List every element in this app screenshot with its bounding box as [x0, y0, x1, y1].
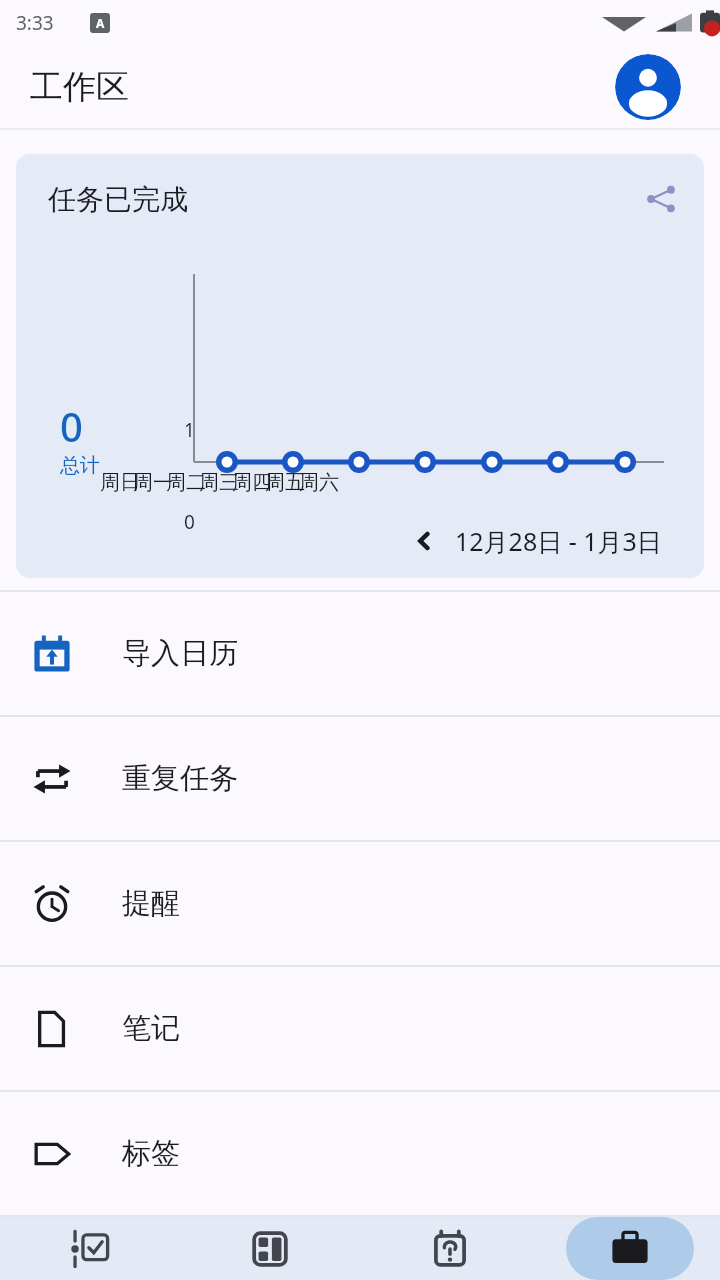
staticText: 导入日历 — [122, 635, 238, 672]
staticText: 周五 — [265, 470, 305, 495]
button[interactable]: 重复任务 — [0, 717, 720, 840]
button[interactable]: 提醒 — [0, 842, 720, 965]
staticText: 1 — [184, 417, 195, 443]
button[interactable]: 导入日历 — [0, 592, 720, 715]
button[interactable]: 看板 — [180, 1217, 360, 1280]
button[interactable]: 笔记 — [0, 967, 720, 1090]
staticText: 周一 — [133, 470, 173, 495]
button[interactable]: Previous week — [407, 518, 668, 564]
staticText: 3:33 — [16, 10, 54, 36]
other: Previous week — [413, 530, 435, 552]
button[interactable]: 时间轴 — [0, 1217, 180, 1280]
staticText: 提醒 — [122, 885, 180, 922]
staticText: 周六 — [299, 470, 339, 495]
button[interactable]: 待定 — [360, 1217, 540, 1280]
button[interactable]: 标签 — [0, 1092, 720, 1215]
button[interactable]: 工作区 — [540, 1217, 720, 1280]
staticText: 12月28日 - 1月3日 — [455, 524, 662, 558]
staticText: 工作区 — [30, 66, 129, 108]
staticText: 周二 — [166, 470, 206, 495]
staticText: 周四 — [232, 470, 272, 495]
staticText: 笔记 — [122, 1010, 180, 1047]
staticText: 任务已完成 — [48, 182, 188, 217]
staticText: A — [96, 15, 105, 31]
button[interactable]: Share — [634, 172, 688, 226]
staticText: 标签 — [122, 1135, 180, 1172]
staticText: 0 — [60, 399, 83, 453]
button[interactable]: 任务已完成 — [16, 154, 704, 578]
staticText: 周三 — [199, 470, 239, 495]
staticText: 周日 — [100, 470, 140, 495]
staticText: 总计 — [60, 453, 100, 478]
button[interactable]: Account — [615, 54, 681, 120]
staticText: 0 — [184, 509, 195, 535]
staticText: 重复任务 — [122, 760, 238, 797]
